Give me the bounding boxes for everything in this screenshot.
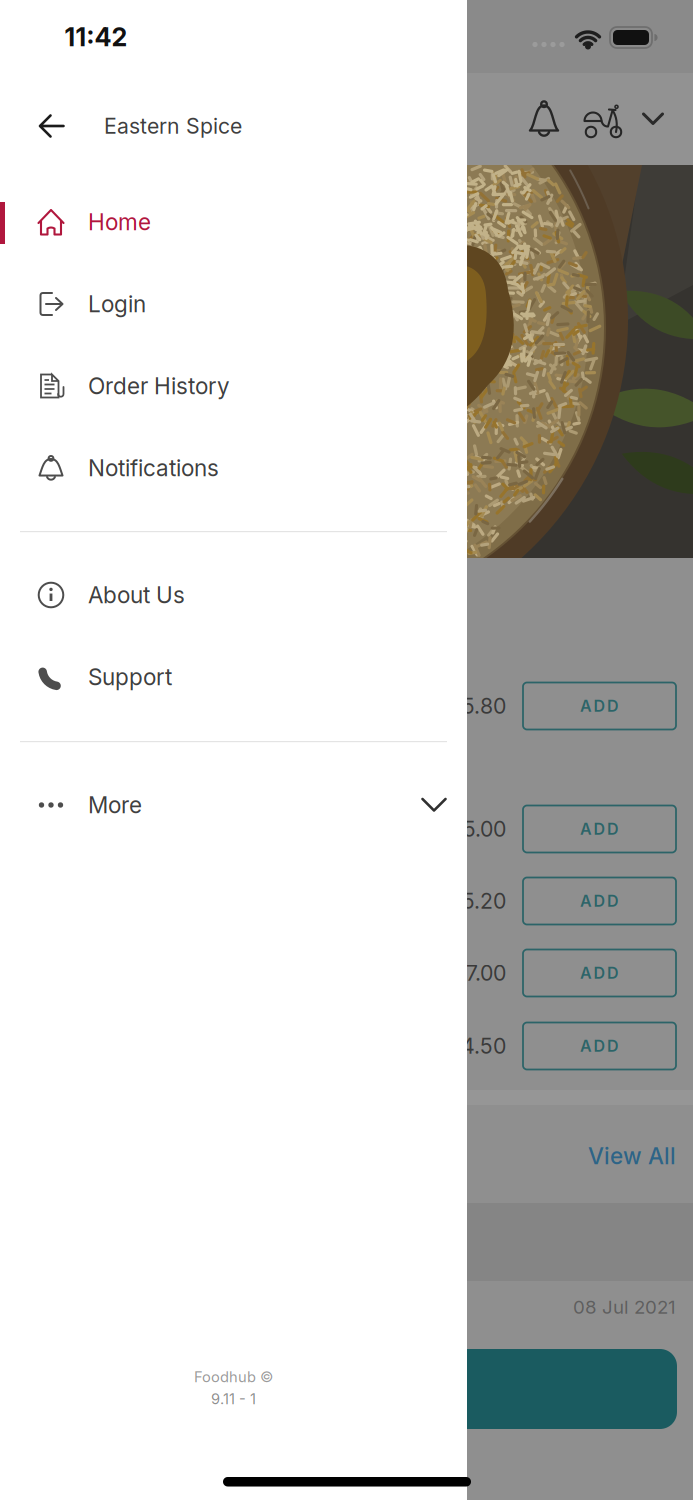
button[interactable]: ADD — [523, 682, 676, 729]
button[interactable]: More — [37, 777, 447, 833]
staticText: More — [88, 792, 142, 818]
staticText: ADD — [580, 892, 619, 910]
button[interactable]: View All — [516, 1143, 676, 1169]
button[interactable]: Expand — [641, 111, 664, 126]
staticText: Foodhub © — [194, 1368, 273, 1386]
staticText: 11:42 — [64, 22, 127, 52]
button[interactable]: Home — [37, 194, 447, 250]
button[interactable]: Notifications — [37, 440, 447, 496]
button[interactable]: View Basket — [437, 1349, 677, 1429]
button[interactable]: ADD — [523, 877, 676, 924]
staticText: 7.00 — [466, 960, 506, 986]
staticText: 5.00 — [463, 816, 506, 842]
staticText: View All — [588, 1143, 676, 1169]
button[interactable]: ADD — [523, 949, 676, 996]
staticText: 08 Jul 2021 — [573, 1296, 676, 1318]
button[interactable]: Delivery — [582, 102, 626, 140]
staticText: Home — [88, 209, 151, 235]
staticText: 5.80 — [462, 693, 506, 719]
staticText: 4.50 — [461, 1033, 506, 1059]
staticText: Notifications — [88, 455, 219, 481]
staticText: Support — [88, 664, 172, 690]
staticText: 5.20 — [462, 888, 506, 914]
button[interactable]: Back — [38, 114, 65, 137]
button[interactable]: Login — [37, 276, 447, 332]
staticText: Login — [88, 291, 146, 317]
staticText: About Us — [88, 582, 185, 608]
button[interactable]: Support — [37, 649, 447, 705]
button[interactable]: Notifications — [527, 99, 561, 141]
staticText: 9.11 - 1 — [211, 1390, 256, 1408]
staticText: ADD — [580, 697, 619, 715]
button[interactable]: ADD — [523, 1022, 676, 1069]
staticText: ADD — [580, 820, 619, 838]
button[interactable]: Order History — [37, 358, 447, 414]
staticText: ADD — [580, 1037, 619, 1055]
button[interactable]: About Us — [37, 567, 447, 623]
staticText: Eastern Spice — [104, 113, 242, 139]
button[interactable]: ADD — [523, 805, 676, 852]
staticText: Order History — [88, 373, 230, 399]
staticText: ADD — [580, 964, 619, 982]
